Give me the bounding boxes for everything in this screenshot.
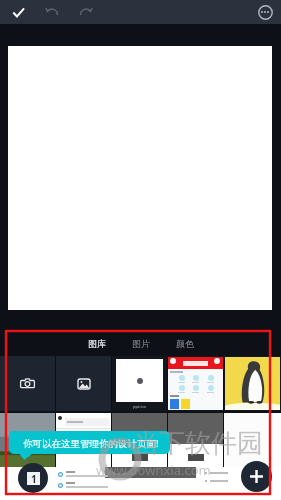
button[interactable]: Photo 6 xyxy=(112,413,167,467)
staticText: 颜色 xyxy=(176,338,194,349)
button[interactable]: Photo 2 xyxy=(168,356,223,411)
button[interactable]: 颜色 xyxy=(174,335,196,352)
button[interactable]: Choose image xyxy=(56,356,111,411)
button[interactable]: 图片 xyxy=(130,335,152,352)
button[interactable]: Photo 3 xyxy=(224,356,281,411)
button[interactable]: Redo xyxy=(74,0,98,24)
button[interactable]: Done xyxy=(6,0,30,24)
button[interactable]: Photo 7 xyxy=(168,413,223,467)
button[interactable]: 图库 xyxy=(86,335,108,352)
button[interactable]: Photo 1 xyxy=(112,356,167,411)
staticText: 图片 xyxy=(132,338,150,349)
staticText: ppt.ico xyxy=(133,404,146,409)
staticText: www.downxia.com xyxy=(96,461,211,479)
button[interactable]: More options xyxy=(255,2,275,22)
button[interactable]: Undo xyxy=(40,0,64,24)
button[interactable]: Photo 5 xyxy=(56,413,111,467)
button[interactable]: 1 xyxy=(18,463,48,493)
staticText: 你可以在这里管理你的设计页面! xyxy=(23,437,159,450)
button[interactable]: Take photo xyxy=(0,356,55,411)
button[interactable]: Photo 8 xyxy=(224,413,281,467)
staticText: 当下软件园 xyxy=(133,427,263,460)
button[interactable]: Photo 4 xyxy=(0,413,55,467)
staticText: 图库 xyxy=(88,338,106,349)
button[interactable]: Add page xyxy=(241,461,272,492)
button[interactable]: 你可以在这里管理你的设计页面! xyxy=(9,431,170,460)
staticText: 1 xyxy=(31,472,37,485)
